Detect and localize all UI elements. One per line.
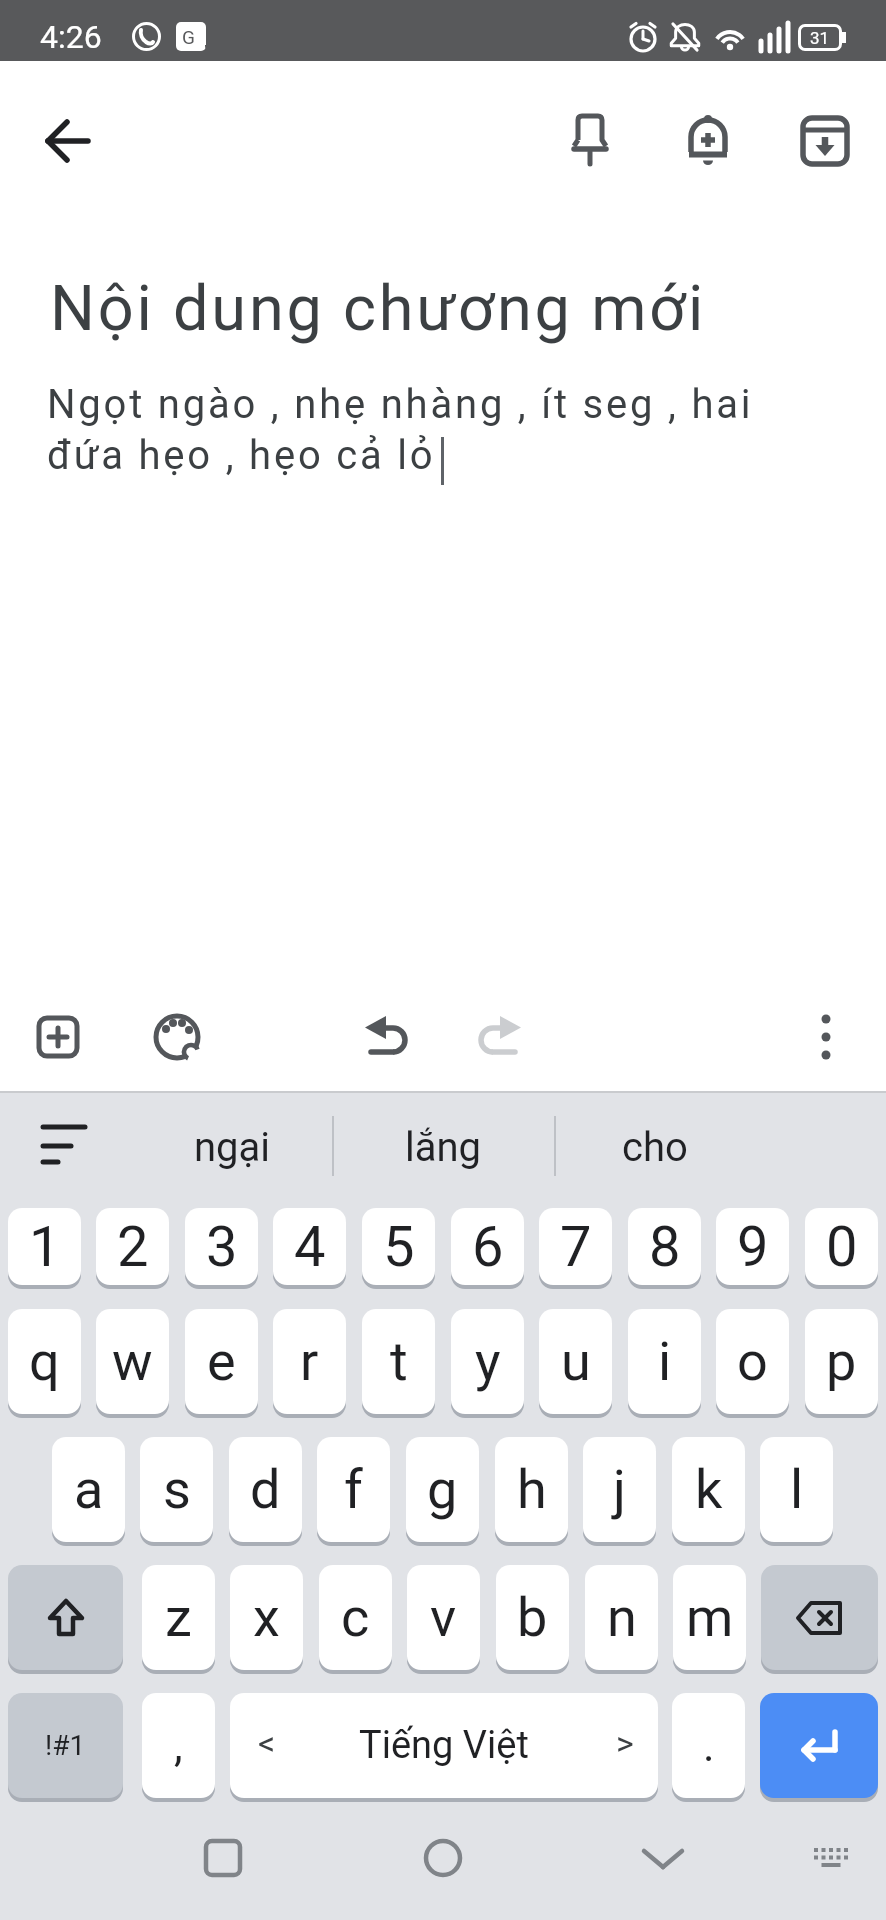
- button[interactable]: 1: [8, 1208, 81, 1285]
- button[interactable]: 9: [716, 1208, 789, 1285]
- button[interactable]: 4: [273, 1208, 346, 1285]
- staticText: 7: [560, 1214, 592, 1280]
- button[interactable]: e: [185, 1309, 258, 1414]
- button[interactable]: [151, 1011, 203, 1063]
- button[interactable]: s: [140, 1437, 213, 1542]
- button[interactable]: q: [8, 1309, 81, 1414]
- button[interactable]: lắng: [333, 1112, 553, 1182]
- button[interactable]: 3: [185, 1208, 258, 1285]
- button[interactable]: j: [583, 1437, 656, 1542]
- staticText: m: [686, 1586, 734, 1649]
- button[interactable]: t: [362, 1309, 435, 1414]
- staticText: g: [427, 1458, 458, 1521]
- staticText: e: [207, 1330, 236, 1393]
- button[interactable]: [44, 117, 92, 165]
- button[interactable]: [423, 1838, 463, 1878]
- button[interactable]: 5: [362, 1208, 435, 1285]
- staticText: 8: [649, 1214, 681, 1280]
- staticText: ,: [174, 1720, 183, 1772]
- button[interactable]: 0: [805, 1208, 878, 1285]
- staticText: 5: [383, 1214, 415, 1280]
- button[interactable]: a: [52, 1437, 125, 1542]
- staticText: i: [658, 1330, 672, 1393]
- button[interactable]: r: [273, 1309, 346, 1414]
- staticText: w: [112, 1330, 153, 1393]
- button[interactable]: x: [230, 1565, 303, 1670]
- staticText: a: [74, 1458, 104, 1521]
- button[interactable]: f: [317, 1437, 390, 1542]
- button[interactable]: w: [96, 1309, 169, 1414]
- button[interactable]: [360, 1012, 408, 1056]
- staticText: >: [616, 1723, 634, 1763]
- button[interactable]: ngại: [122, 1112, 342, 1182]
- button[interactable]: [568, 112, 612, 168]
- button[interactable]: [760, 1693, 878, 1798]
- button[interactable]: [686, 112, 730, 168]
- staticText: 0: [826, 1214, 858, 1280]
- button[interactable]: k: [672, 1437, 745, 1542]
- button[interactable]: y: [451, 1309, 524, 1414]
- button[interactable]: c: [319, 1565, 392, 1670]
- button[interactable]: o: [716, 1309, 789, 1414]
- staticText: 9: [737, 1214, 769, 1280]
- button[interactable]: [36, 1015, 80, 1059]
- staticText: p: [826, 1330, 857, 1393]
- staticText: 2: [117, 1214, 149, 1280]
- button[interactable]: [203, 1838, 243, 1878]
- button[interactable]: !#1: [8, 1693, 123, 1798]
- button[interactable]: i: [628, 1309, 701, 1414]
- button[interactable]: .: [672, 1693, 745, 1798]
- button[interactable]: [818, 1013, 834, 1061]
- button[interactable]: z: [142, 1565, 215, 1670]
- staticText: Ngọt ngào , nhẹ nhàng , ít seg , hai đứa…: [47, 381, 754, 478]
- button[interactable]: g: [406, 1437, 479, 1542]
- button[interactable]: [478, 1012, 526, 1056]
- staticText: 4: [294, 1214, 326, 1280]
- button[interactable]: h: [495, 1437, 568, 1542]
- button[interactable]: [627, 21, 659, 53]
- staticText: <: [258, 1723, 276, 1763]
- button[interactable]: 6: [451, 1208, 524, 1285]
- staticText: lắng: [405, 1124, 482, 1171]
- button[interactable]: 7: [539, 1208, 612, 1285]
- button[interactable]: [132, 22, 161, 51]
- button[interactable]: [641, 1847, 685, 1871]
- button[interactable]: [812, 1846, 850, 1872]
- staticText: v: [430, 1586, 457, 1649]
- button[interactable]: d: [229, 1437, 302, 1542]
- button[interactable]: 2: [96, 1208, 169, 1285]
- button[interactable]: [669, 21, 701, 53]
- button[interactable]: l: [760, 1437, 833, 1542]
- staticText: !#1: [45, 1729, 86, 1762]
- staticText: 4:26: [40, 18, 102, 56]
- button[interactable]: u: [539, 1309, 612, 1414]
- button[interactable]: Tiếng Việt: [230, 1693, 658, 1798]
- staticText: n: [607, 1586, 637, 1649]
- staticText: c: [341, 1586, 370, 1649]
- button[interactable]: cho: [545, 1112, 765, 1182]
- button[interactable]: n: [585, 1565, 658, 1670]
- staticText: r: [300, 1330, 319, 1393]
- staticText: cho: [622, 1124, 688, 1171]
- staticText: x: [253, 1586, 280, 1649]
- button[interactable]: b: [496, 1565, 569, 1670]
- button[interactable]: [8, 1565, 123, 1670]
- staticText: 1: [29, 1214, 61, 1280]
- button[interactable]: [758, 20, 794, 54]
- staticText: 31: [810, 28, 830, 48]
- button[interactable]: m: [673, 1565, 746, 1670]
- staticText: q: [29, 1330, 60, 1393]
- button[interactable]: [712, 22, 748, 52]
- staticText: 6: [472, 1214, 504, 1280]
- staticText: y: [475, 1330, 501, 1393]
- button[interactable]: 8: [628, 1208, 701, 1285]
- button[interactable]: v: [407, 1565, 480, 1670]
- button[interactable]: [761, 1565, 878, 1670]
- button[interactable]: [800, 114, 850, 166]
- staticText: Nội dung chương mới: [50, 272, 707, 346]
- button[interactable]: p: [805, 1309, 878, 1414]
- staticText: k: [695, 1458, 723, 1521]
- button[interactable]: ,: [142, 1693, 215, 1798]
- staticText: Tiếng Việt: [359, 1723, 529, 1768]
- button[interactable]: [41, 1122, 87, 1166]
